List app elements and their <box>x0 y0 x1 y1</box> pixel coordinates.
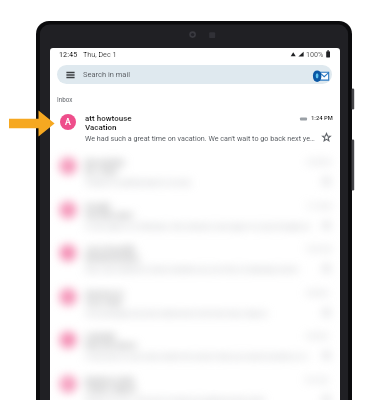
button[interactable]: Account <box>313 68 329 84</box>
staticText: A <box>65 117 71 127</box>
staticText: Medium Daily <box>85 376 135 385</box>
staticText: 100% <box>306 50 324 58</box>
staticText: Weekend plans <box>85 254 140 263</box>
staticText: att howtouse <box>85 114 132 123</box>
staticText: New job alerts <box>85 341 137 350</box>
staticText: J <box>66 248 71 258</box>
button[interactable]: G <box>50 192 340 235</box>
staticText: Your order <box>85 298 123 307</box>
button[interactable]: J <box>50 235 340 278</box>
staticText: Re: order <box>85 167 118 176</box>
staticText: G <box>65 205 71 215</box>
button[interactable]: Search in mail <box>57 65 332 84</box>
staticText: M <box>64 379 72 389</box>
staticText: Your package has been delivered to the f… <box>85 309 319 317</box>
staticText: 12:45 <box>59 50 78 58</box>
staticText: Amazon.in <box>85 289 124 298</box>
staticText: L <box>66 335 71 345</box>
staticText: Search in mail <box>83 70 131 79</box>
staticText: Thu, Dec 1 <box>83 50 117 58</box>
staticText: Bernadette <box>85 158 125 167</box>
button[interactable]: Star <box>322 133 331 142</box>
staticText: Vacation <box>85 123 117 132</box>
staticText: Thanks for getting back to me ab <box>85 178 319 186</box>
staticText: Security alert <box>85 211 134 220</box>
staticText: Jess Donnelly <box>85 245 136 254</box>
button[interactable]: L <box>50 322 340 365</box>
staticText: 1:24 PM <box>311 115 333 122</box>
staticText: B <box>65 161 71 171</box>
staticText: Stories for you. The best of what we pub… <box>85 396 319 400</box>
staticText: Hey! Just wanted to check whether you ar… <box>85 265 319 273</box>
button[interactable]: A <box>50 279 340 322</box>
button[interactable]: B <box>50 148 340 191</box>
staticText: Google <box>85 202 111 211</box>
button[interactable]: A <box>50 110 340 150</box>
button[interactable]: M <box>50 366 340 400</box>
staticText: A <box>65 292 71 302</box>
staticText: Today's digest <box>85 385 136 394</box>
staticText: LinkedIn <box>85 332 116 341</box>
staticText: Inbox <box>57 96 73 103</box>
staticText: We had such a great time on vacation. We… <box>85 134 319 142</box>
